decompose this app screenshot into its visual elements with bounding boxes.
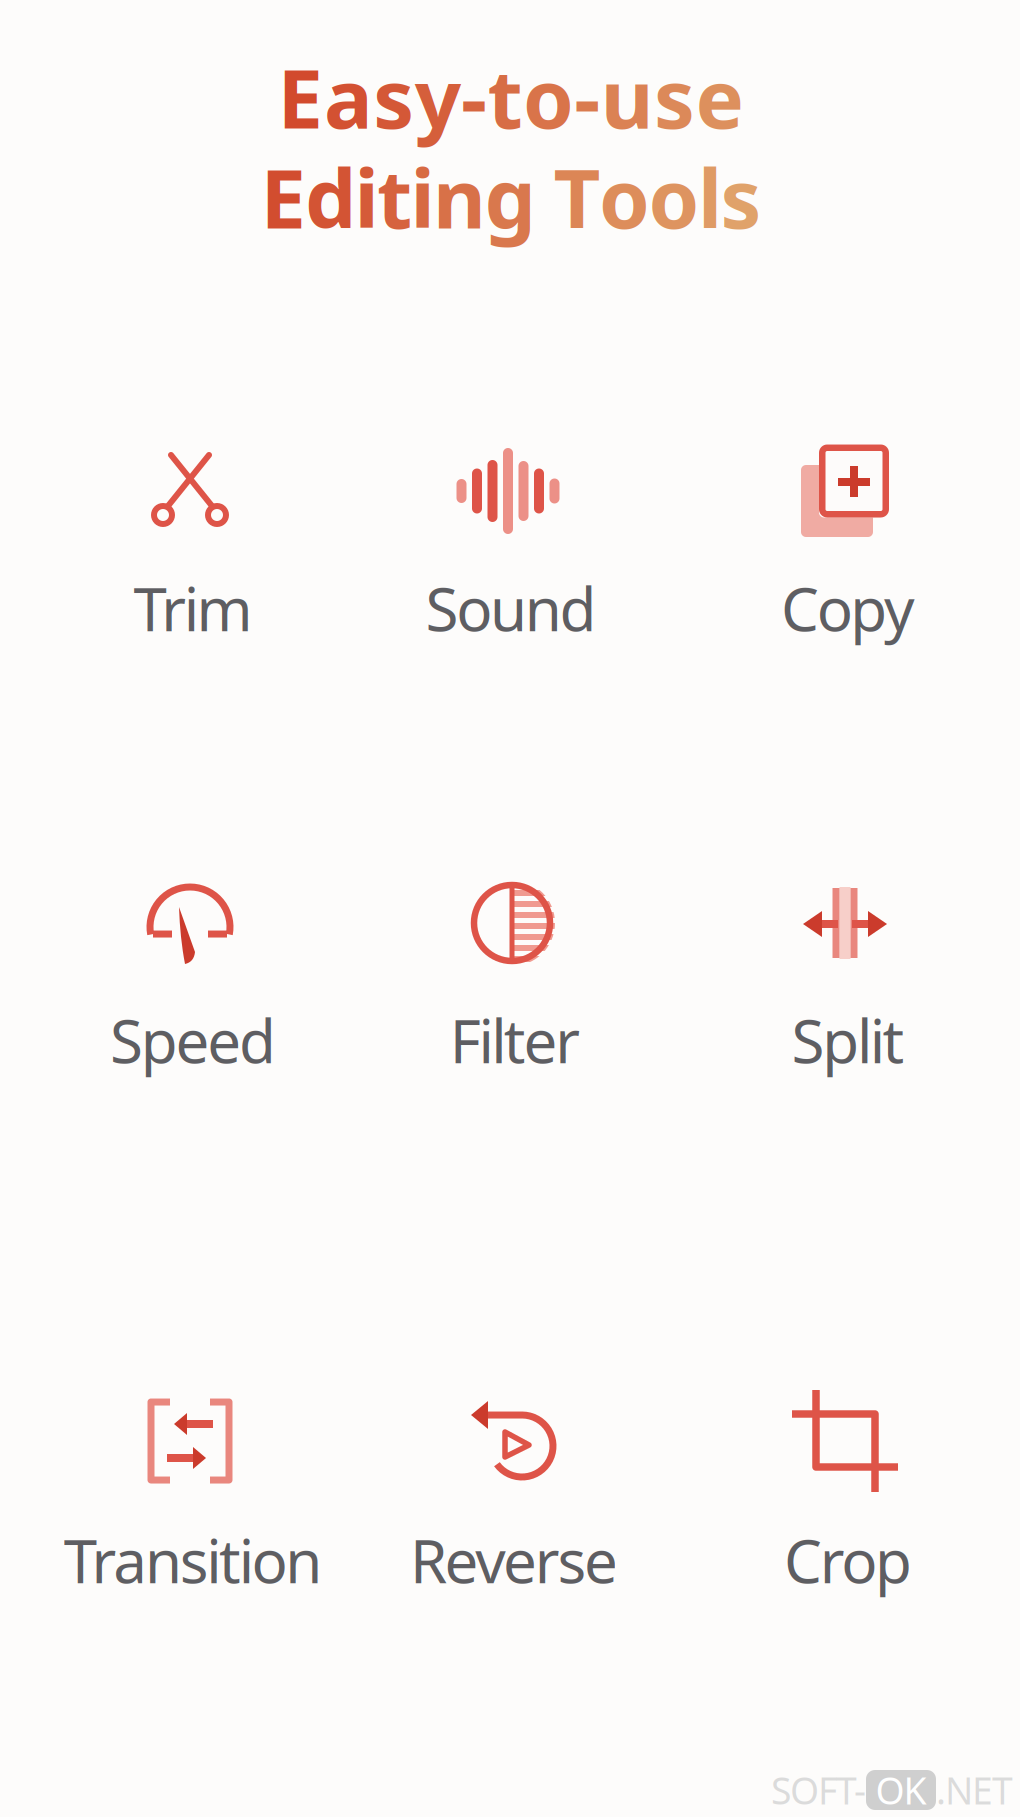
staticText: Crop (784, 1520, 912, 1600)
staticText: a (324, 43, 373, 151)
staticText: o (648, 143, 699, 251)
staticText: OK (875, 1765, 926, 1815)
staticText: - (574, 43, 600, 151)
button[interactable]: Crop (0, 0, 1020, 1817)
staticText: Trim (133, 568, 252, 648)
staticText: s (654, 43, 695, 151)
staticText: E (277, 43, 323, 151)
button[interactable]: Trim (0, 0, 1020, 1817)
staticText: o (523, 43, 574, 151)
staticText: y (415, 43, 461, 151)
button[interactable]: Copy (0, 0, 1020, 1817)
staticText (534, 143, 555, 251)
staticText: Transition (64, 1520, 322, 1600)
staticText: SOFT- (771, 1765, 866, 1815)
staticText: i (410, 143, 434, 251)
staticText: l (698, 143, 722, 251)
staticText: n (433, 143, 486, 251)
staticText: .NET (936, 1765, 1013, 1815)
staticText: e (695, 43, 744, 151)
staticText: u (601, 43, 654, 151)
staticText: Copy (781, 568, 915, 648)
staticText: g (484, 143, 535, 251)
staticText: T (553, 143, 600, 251)
staticText: s (720, 143, 761, 251)
staticText: Split (792, 1000, 904, 1080)
button[interactable]: Split (0, 0, 1020, 1817)
staticText: Filter (450, 1000, 580, 1080)
button[interactable]: Sound (0, 0, 1020, 1817)
staticText: o (599, 143, 650, 251)
staticText: E (260, 143, 306, 251)
staticText: i (354, 143, 378, 251)
button[interactable]: Transition (0, 0, 1020, 1817)
staticText: - (461, 43, 487, 151)
staticText: s (373, 43, 414, 151)
staticText: Reverse (410, 1520, 618, 1600)
button[interactable]: Filter (0, 0, 1020, 1817)
button[interactable]: Speed (0, 0, 1020, 1817)
staticText: t (487, 43, 522, 151)
staticText: Sound (426, 568, 596, 648)
staticText: d (305, 143, 356, 251)
staticText: Speed (110, 1000, 276, 1080)
button[interactable]: Reverse (0, 0, 1020, 1817)
staticText: t (377, 143, 412, 251)
